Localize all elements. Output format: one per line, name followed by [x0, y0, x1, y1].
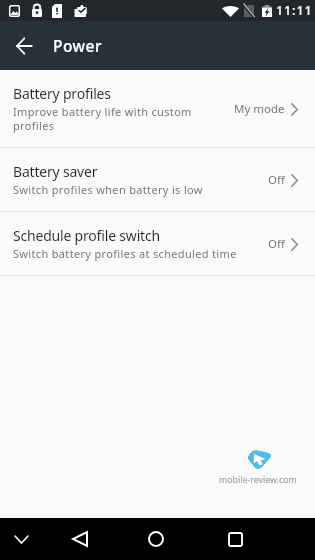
- button[interactable]: Home: [116, 518, 196, 560]
- staticText: Off: [268, 236, 285, 252]
- staticText: Switch profiles when battery is low: [13, 182, 203, 197]
- staticText: Switch battery profiles at scheduled tim…: [13, 246, 237, 261]
- staticText: Battery saver: [13, 162, 98, 181]
- staticText: mobile-review.com: [219, 474, 297, 486]
- button[interactable]: Schedule profile switch: [0, 212, 315, 275]
- staticText: Improve battery life with custom profile…: [13, 104, 193, 134]
- button[interactable]: Hide keyboard: [0, 518, 43, 560]
- staticText: My mode: [234, 101, 285, 117]
- button[interactable]: Recents: [196, 518, 274, 560]
- staticText: Off: [268, 172, 285, 188]
- staticText: Schedule profile switch: [13, 226, 160, 245]
- button[interactable]: Battery profiles: [0, 70, 315, 147]
- staticText: Power: [53, 35, 103, 56]
- button[interactable]: Battery saver: [0, 148, 315, 211]
- staticText: 11:11: [276, 2, 313, 19]
- button[interactable]: Back: [0, 22, 48, 70]
- button[interactable]: Back: [43, 518, 116, 560]
- staticText: Battery profiles: [13, 84, 111, 103]
